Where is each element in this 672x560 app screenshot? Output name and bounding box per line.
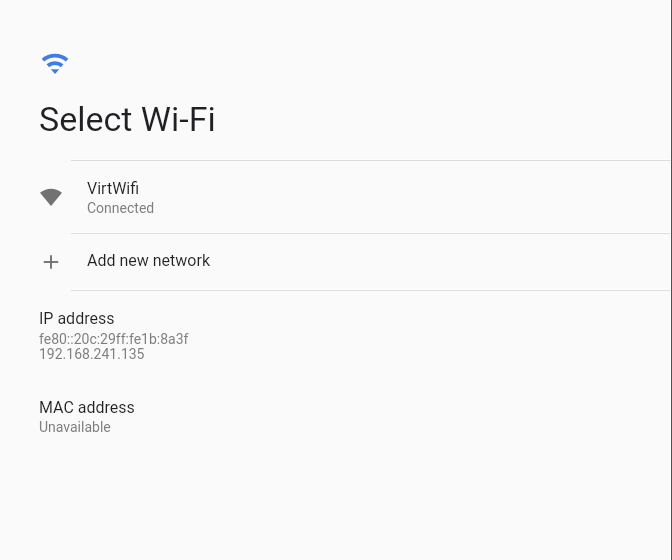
staticText: fe80::20c:29ff:fe1b:8a3f xyxy=(39,331,189,347)
button[interactable]: Signal strength xyxy=(0,161,672,233)
other: Wi-Fi xyxy=(39,50,71,76)
staticText: IP address xyxy=(39,309,115,328)
staticText: Connected xyxy=(87,200,155,216)
staticText: Unavailable xyxy=(39,419,111,435)
staticText: 192.168.241.135 xyxy=(39,346,145,362)
other: Add network xyxy=(43,254,59,270)
staticText: MAC address xyxy=(39,398,135,417)
button[interactable]: Add network xyxy=(0,234,672,290)
staticText: Add new network xyxy=(87,251,210,270)
other: Signal strength xyxy=(40,187,62,206)
staticText: Select Wi-Fi xyxy=(39,99,216,139)
staticText: VirtWifi xyxy=(87,179,140,198)
